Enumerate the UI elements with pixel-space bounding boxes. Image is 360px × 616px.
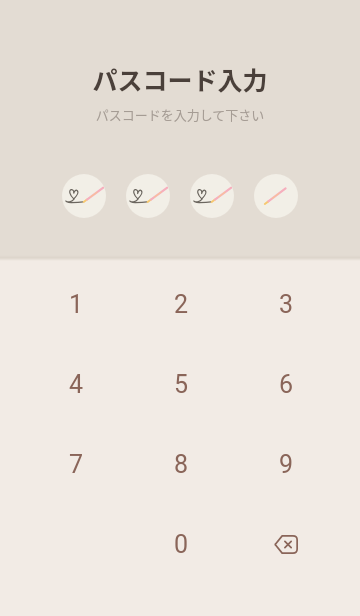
button[interactable]: 5 xyxy=(154,357,208,411)
button[interactable]: 4 xyxy=(49,357,103,411)
staticText: 7 xyxy=(69,450,84,479)
button[interactable]: 6 xyxy=(259,357,313,411)
button[interactable]: 2 xyxy=(154,277,208,331)
button[interactable]: 1 xyxy=(49,277,103,331)
staticText: 3 xyxy=(279,290,294,319)
button[interactable]: 0 xyxy=(154,517,208,571)
staticText: 1 xyxy=(69,290,84,319)
staticText: 8 xyxy=(174,450,189,479)
staticText: パスコード入力 xyxy=(0,61,360,97)
staticText: 5 xyxy=(174,370,189,399)
staticText: 9 xyxy=(279,450,294,479)
button[interactable]: Delete xyxy=(259,517,313,571)
staticText: 6 xyxy=(279,370,294,399)
button[interactable]: 8 xyxy=(154,437,208,491)
staticText: パスコードを入力して下さい xyxy=(0,105,360,124)
staticText: 4 xyxy=(69,370,84,399)
button[interactable]: 9 xyxy=(259,437,313,491)
staticText: 2 xyxy=(174,290,189,319)
staticText: 0 xyxy=(174,530,189,559)
button[interactable]: 7 xyxy=(49,437,103,491)
button[interactable]: 3 xyxy=(259,277,313,331)
